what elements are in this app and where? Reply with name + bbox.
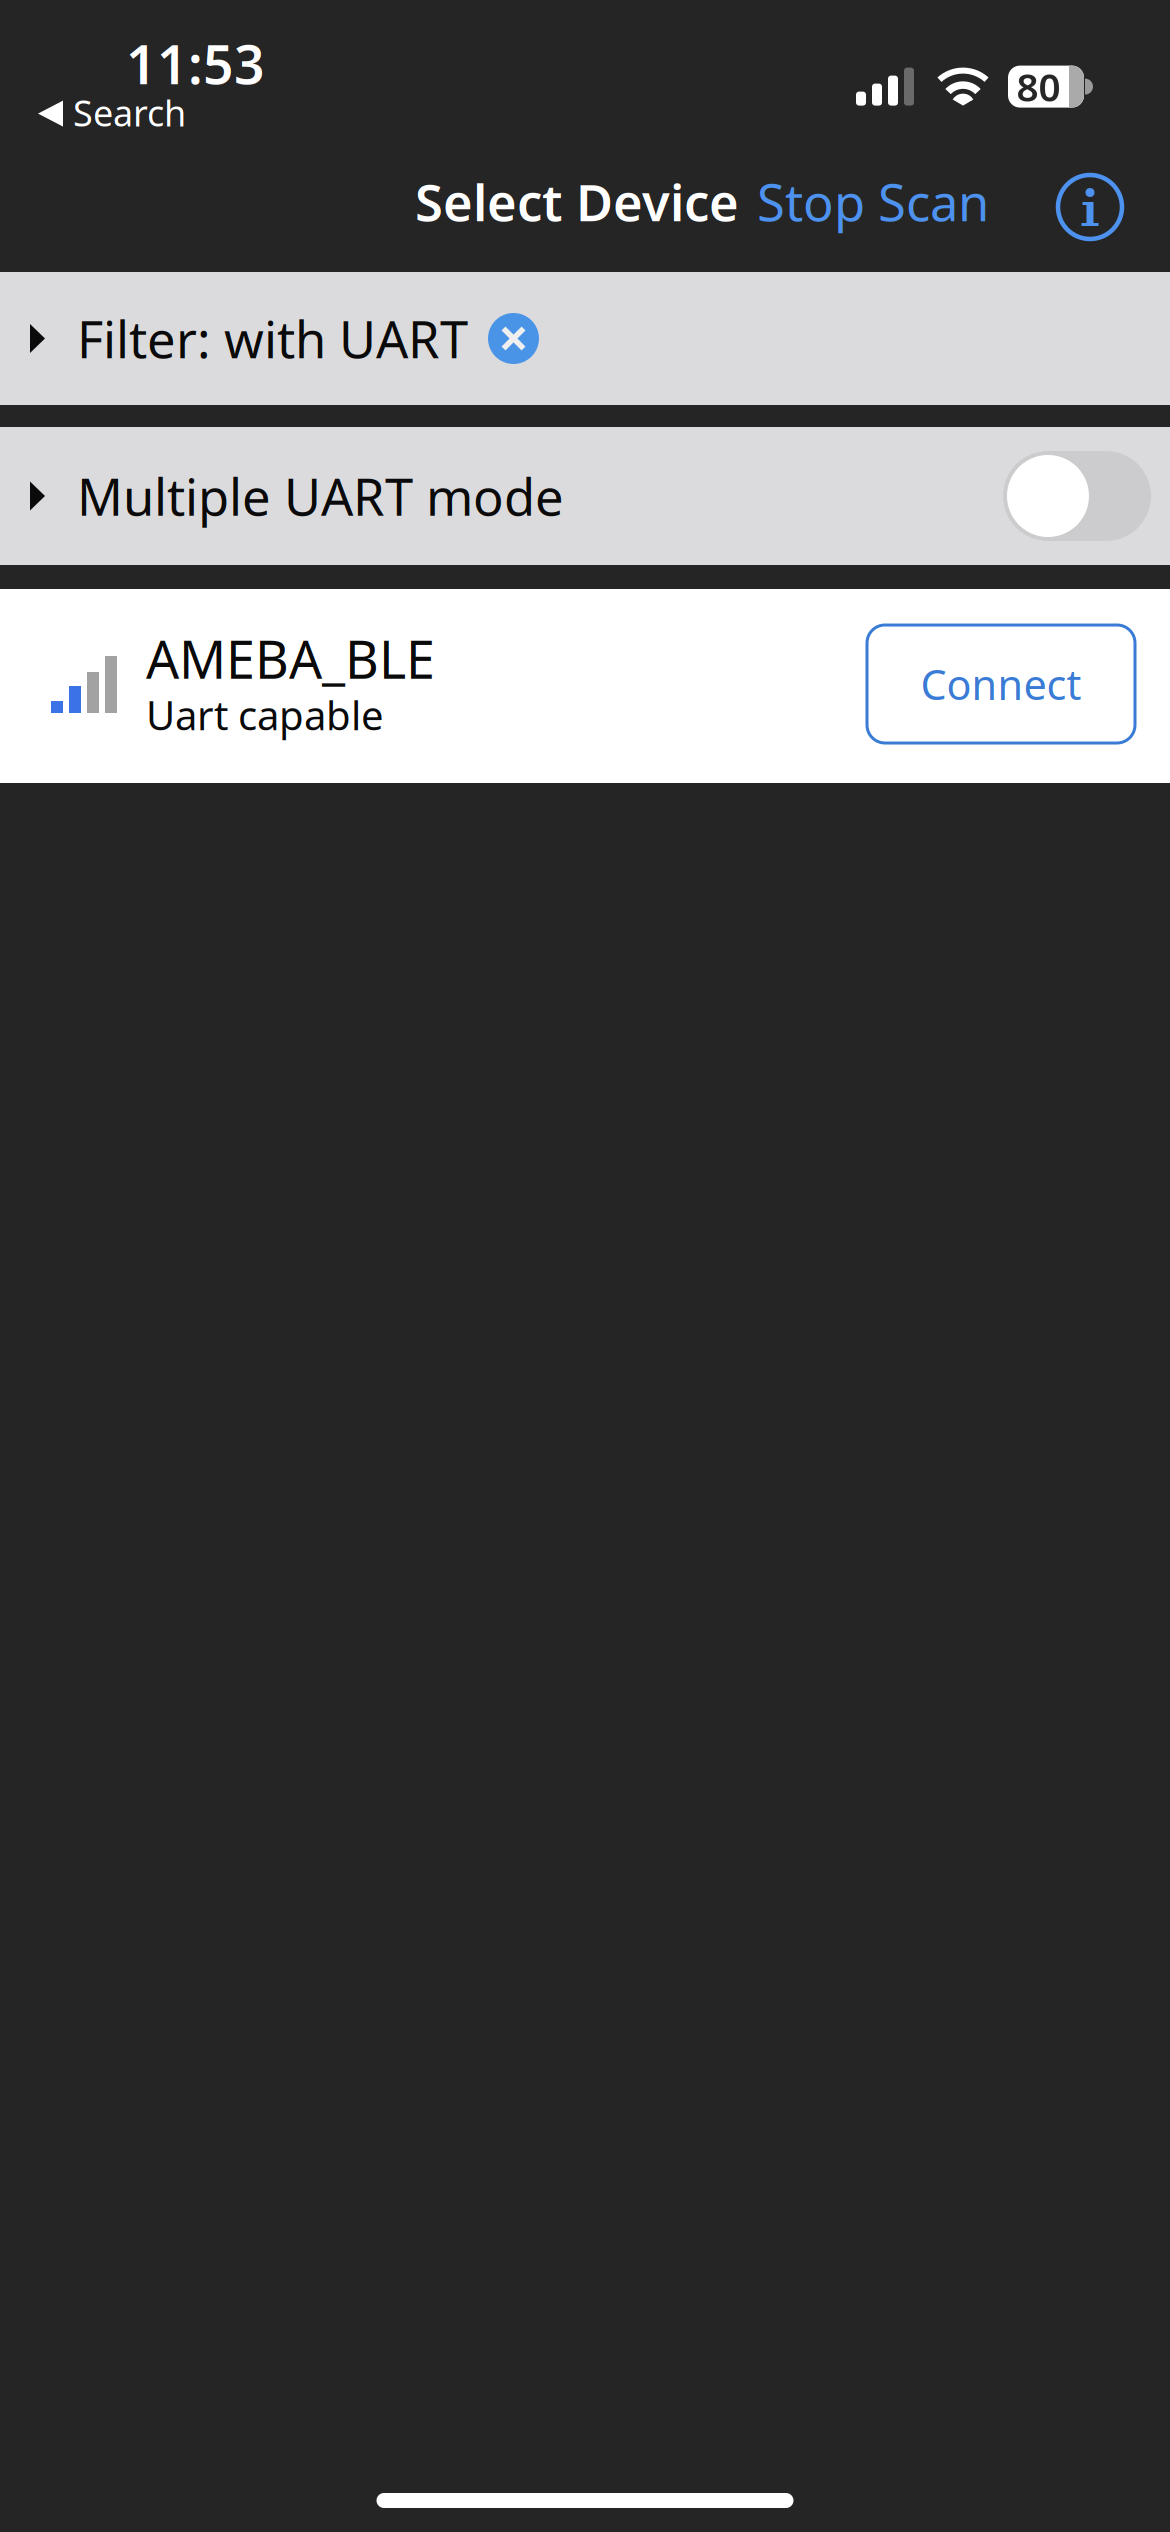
staticText: Multiple UART mode: [77, 462, 564, 530]
button[interactable]: Connect: [867, 625, 1135, 743]
staticText: 80: [1016, 61, 1060, 112]
button[interactable]: Search: [0, 12, 186, 136]
staticText: Search: [73, 89, 186, 136]
button[interactable]: Multiple UART mode: [0, 427, 1170, 565]
staticText: 11:53: [126, 28, 265, 99]
staticText: Stop Scan: [757, 168, 989, 235]
button[interactable]: Info: [0, 148, 1123, 240]
staticText: Uart capable: [146, 688, 384, 741]
staticText: Select Device: [415, 168, 739, 235]
staticText: AMEBA_BLE: [146, 624, 435, 693]
button[interactable]: Filter: with UART: [0, 272, 1170, 405]
button[interactable]: Stop Scan: [0, 148, 989, 235]
staticText: Connect: [920, 657, 1081, 711]
staticText: Filter: with UART: [77, 305, 468, 372]
